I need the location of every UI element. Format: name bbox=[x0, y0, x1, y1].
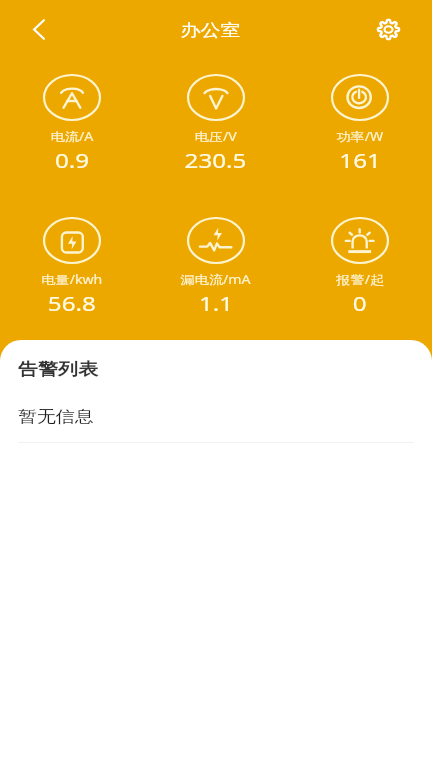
button[interactable]: 漏电流/mA bbox=[144, 217, 288, 317]
button[interactable]: Settings bbox=[372, 13, 404, 45]
staticText: 0.9 bbox=[55, 147, 90, 174]
staticText: 报警/起 bbox=[336, 271, 385, 287]
staticText: 0 bbox=[353, 290, 367, 317]
button[interactable]: 电流/A bbox=[0, 74, 144, 174]
staticText: 161 bbox=[339, 147, 382, 174]
button[interactable]: 功率/W bbox=[288, 74, 432, 174]
button[interactable]: 电压/V bbox=[144, 74, 288, 174]
button[interactable]: 报警/起 bbox=[288, 217, 432, 317]
staticText: 漏电流/mA bbox=[181, 271, 251, 287]
button[interactable]: Back bbox=[20, 10, 58, 48]
staticText: 1.1 bbox=[199, 290, 234, 317]
staticText: 56.8 bbox=[48, 290, 96, 317]
staticText: 电量/kwh bbox=[41, 271, 103, 287]
staticText: 230.5 bbox=[184, 147, 247, 174]
staticText: 暂无信息 bbox=[18, 407, 93, 427]
staticText: 告警列表 bbox=[18, 359, 98, 380]
staticText: 办公室 bbox=[180, 20, 241, 41]
button[interactable]: 电量/kwh bbox=[0, 217, 144, 317]
staticText: 电压/V bbox=[195, 128, 237, 144]
staticText: 电流/A bbox=[51, 128, 94, 144]
staticText: 功率/W bbox=[336, 128, 384, 144]
